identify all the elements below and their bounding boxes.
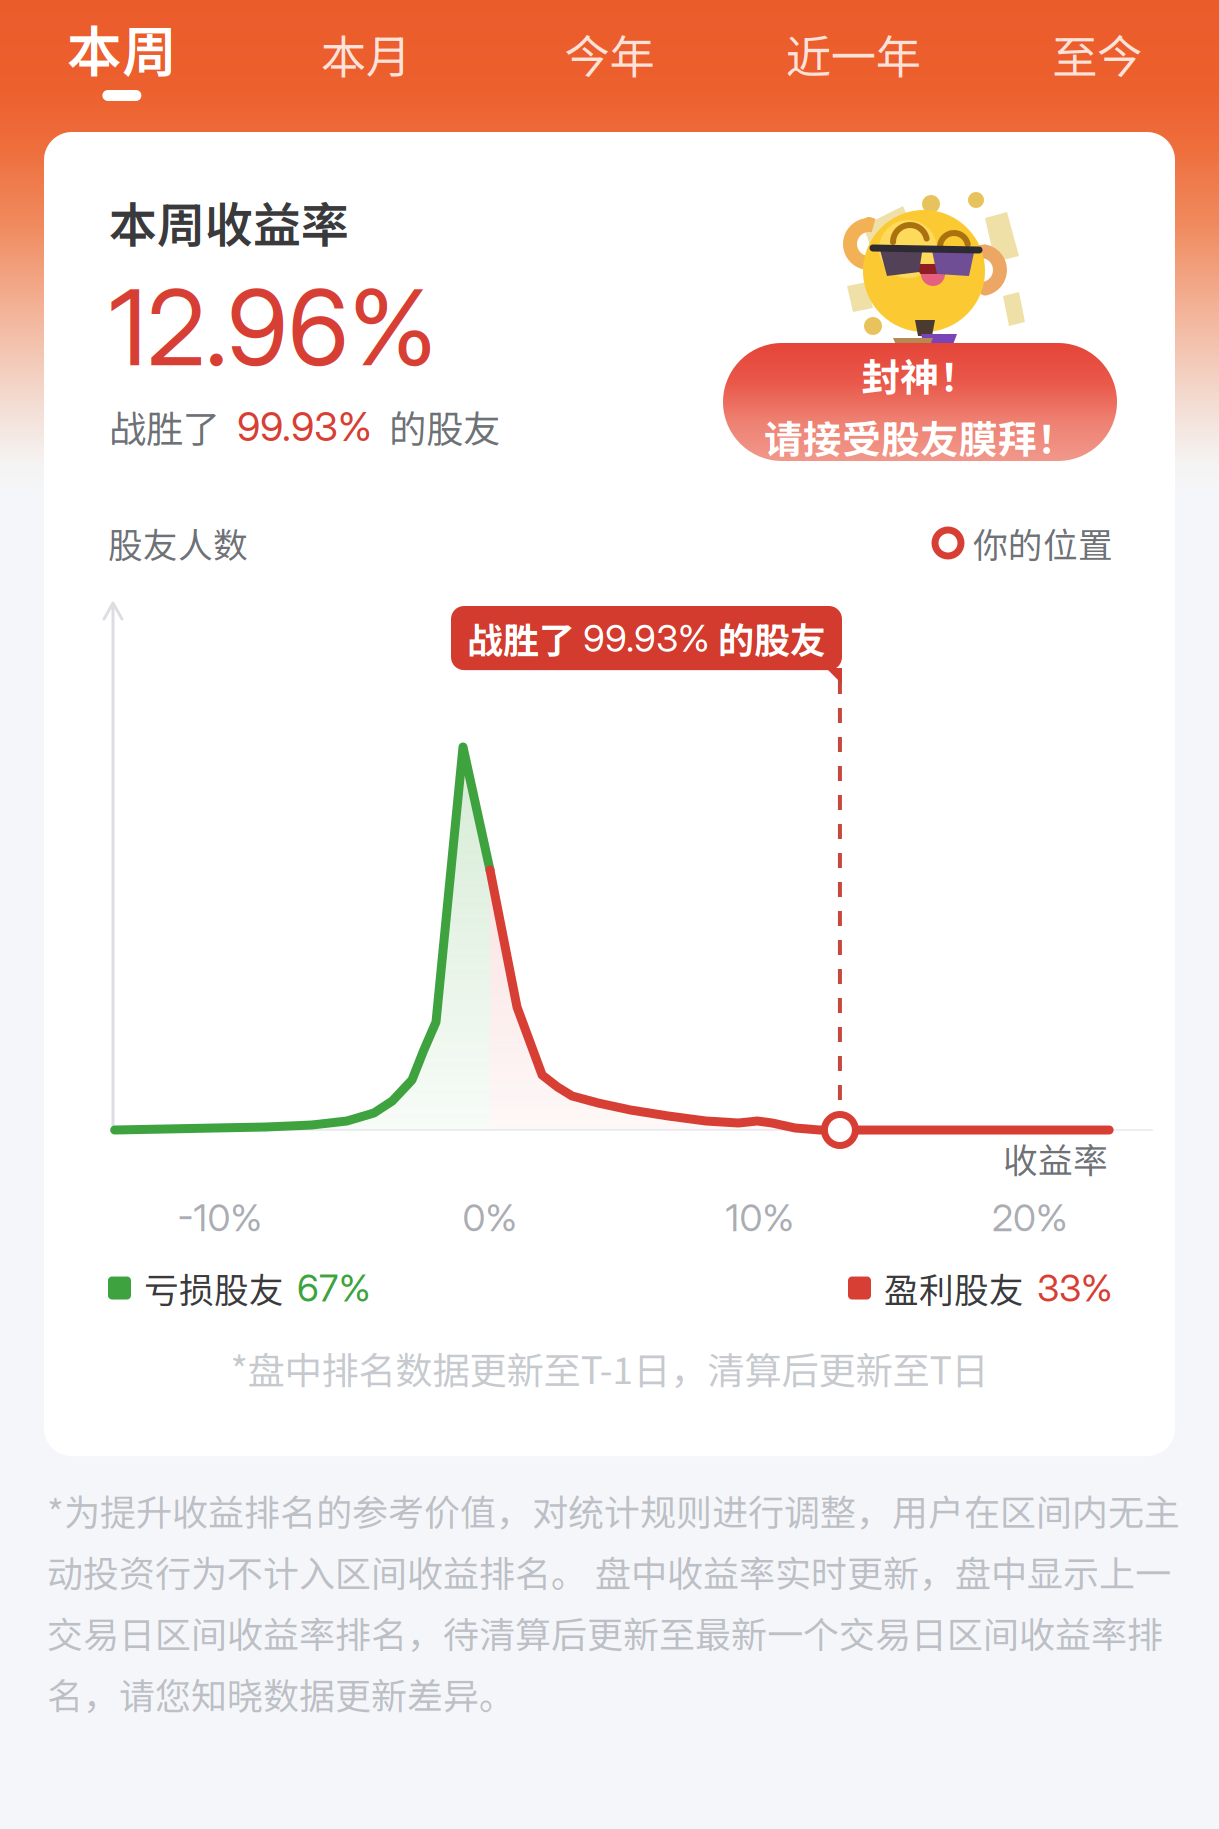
button[interactable]: 至今 (975, 0, 1219, 132)
staticText: 0% (462, 1195, 517, 1240)
staticText: *盘中排名数据更新至T-1日，清算后更新至T日 (230, 1341, 988, 1395)
staticText: 本周收益率 (109, 187, 349, 256)
staticText: 今年 (564, 21, 654, 87)
staticText: 的股友 (710, 612, 826, 664)
staticText: 本周 (67, 8, 177, 87)
staticText: 近一年 (786, 21, 921, 87)
staticText: 至今 (1052, 21, 1142, 87)
button[interactable]: 近一年 (731, 0, 975, 132)
staticText: 收益率 (1003, 1133, 1108, 1183)
staticText: 封神！ (861, 347, 978, 403)
button[interactable]: 本月 (244, 0, 488, 132)
staticText: 33% (1037, 1265, 1113, 1311)
button[interactable]: 今年 (488, 0, 731, 132)
staticText: 99.93% (583, 615, 710, 661)
staticText: 12.96% (109, 264, 437, 390)
staticText: 股友人数 (108, 518, 248, 568)
staticText: *为提升收益排名的参考价值，对统计规则进行调整，用户在区间内无主动投资行为不计入… (47, 1484, 1180, 1720)
staticText: 亏损股友 (144, 1263, 284, 1313)
staticText: 20% (992, 1195, 1068, 1240)
staticText: -10% (177, 1195, 262, 1240)
staticText: 战胜了 (467, 612, 583, 664)
staticText: 本月 (321, 21, 411, 87)
staticText: 请接受股友膜拜！ (764, 409, 1076, 465)
staticText: 67% (297, 1265, 371, 1311)
staticText: 战胜了 (109, 399, 220, 453)
staticText: 的股友 (389, 399, 500, 453)
staticText: 99.93% (237, 402, 372, 451)
button[interactable]: 本周 (0, 0, 244, 132)
staticText: 你的位置 (973, 518, 1113, 568)
staticText: 盈利股友 (884, 1263, 1024, 1313)
staticText: 10% (725, 1195, 794, 1240)
